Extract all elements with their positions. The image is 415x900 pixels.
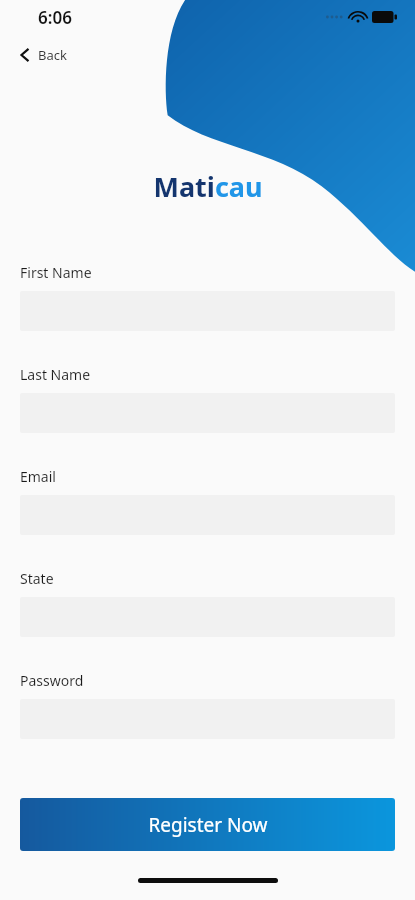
staticText: Maticau <box>153 168 263 205</box>
staticText: Password <box>20 671 84 690</box>
staticText: Register Now <box>148 812 268 838</box>
button[interactable]: Back <box>14 40 73 70</box>
staticText: First Name <box>20 263 92 282</box>
staticText: Back <box>38 46 67 64</box>
staticText: 6:06 <box>38 6 72 29</box>
button[interactable]: Register Now <box>20 798 395 851</box>
staticText: State <box>20 569 54 588</box>
staticText: Last Name <box>20 365 91 384</box>
staticText: Email <box>20 467 56 486</box>
